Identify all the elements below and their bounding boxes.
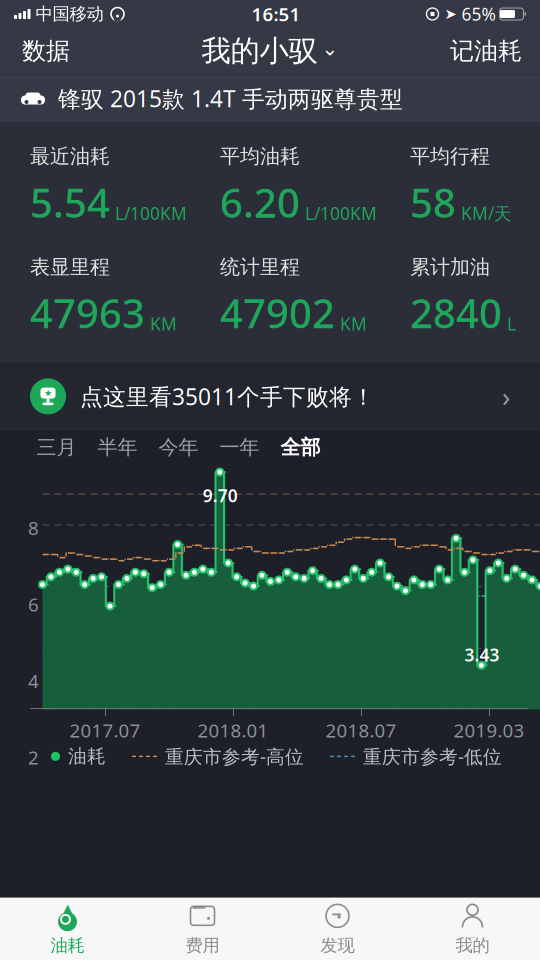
staticText: 记油耗 [450,36,522,66]
staticText: 今年 [158,435,198,460]
staticText: 我的 [455,935,489,956]
staticText: 重庆市参考-低位 [363,744,502,769]
staticText: 16:51 [251,2,300,26]
staticText: 累计加油 [410,255,490,279]
staticText: 65% [461,2,495,25]
staticText: 8 [28,515,39,540]
button[interactable]: 我的 [405,898,540,960]
staticText: 锋驭 2015款 1.4T 手动两驱尊贵型 [58,83,403,113]
button[interactable]: ▲ [0,898,135,960]
staticText: 2019.03 [453,718,524,743]
staticText: L/100KM [305,202,377,225]
button[interactable]: 发现 [270,898,405,960]
staticText: 费用 [185,935,219,956]
staticText: 47963 [30,286,145,339]
staticText: 全部 [280,435,320,460]
staticText: 发现 [320,935,354,956]
staticText: 最近油耗 [30,144,110,169]
staticText: 6 [28,592,39,617]
button[interactable]: 三月 [26,430,87,464]
staticText: 点这里看35011个手下败将！ [80,381,375,411]
staticText: 2017.07 [69,718,140,743]
staticText: 表显里程 [30,255,110,279]
staticText: L [507,312,516,335]
staticText: 半年 [97,435,137,460]
staticText: › [502,379,510,414]
staticText: 9.70 [203,484,238,507]
staticText: 重庆市参考-高位 [165,744,304,769]
button[interactable]: 费用 [135,898,270,960]
staticText: 4 [28,668,39,693]
button[interactable]: 半年 [87,430,148,464]
button[interactable]: 锋驭 2015款 1.4T 手动两驱尊贵型 [0,75,540,122]
staticText: KM/天 [461,202,511,225]
staticText: 平均油耗 [220,144,300,169]
button[interactable]: ★ [0,363,540,429]
staticText: 2840 [410,286,502,339]
staticText: 油耗 [50,935,84,956]
button[interactable]: 今年 [148,430,209,464]
staticText: 5.54 [30,176,110,229]
staticText: 47902 [220,286,335,339]
button[interactable]: 记油耗 [432,28,540,74]
staticText: ★ [44,388,52,398]
staticText: 一年 [219,435,259,460]
staticText: 3.43 [464,643,499,666]
button[interactable]: 数据 [0,28,92,74]
button[interactable]: 全部 [270,430,331,464]
staticText: ⌄ [321,37,338,60]
staticText: 平均行程 [410,144,490,169]
staticText: 2018.07 [325,718,396,743]
staticText: 中国移动 [35,3,103,25]
staticText: 2018.01 [197,718,268,743]
staticText: 统计里程 [220,255,300,279]
staticText: KM [150,312,177,335]
staticText: 58 [410,176,456,229]
button[interactable]: 一年 [209,430,270,464]
staticText: 2 [28,745,39,769]
staticText: KM [340,312,367,335]
staticText: 三月 [36,435,76,460]
staticText: 油耗 [68,745,106,768]
staticText: L/100KM [115,202,187,225]
staticText: ▲ [62,900,73,917]
staticText: 我的小驭 [201,33,317,69]
staticText: ➤ [444,6,456,22]
staticText: 6.20 [220,176,300,229]
staticText: 数据 [22,36,70,66]
